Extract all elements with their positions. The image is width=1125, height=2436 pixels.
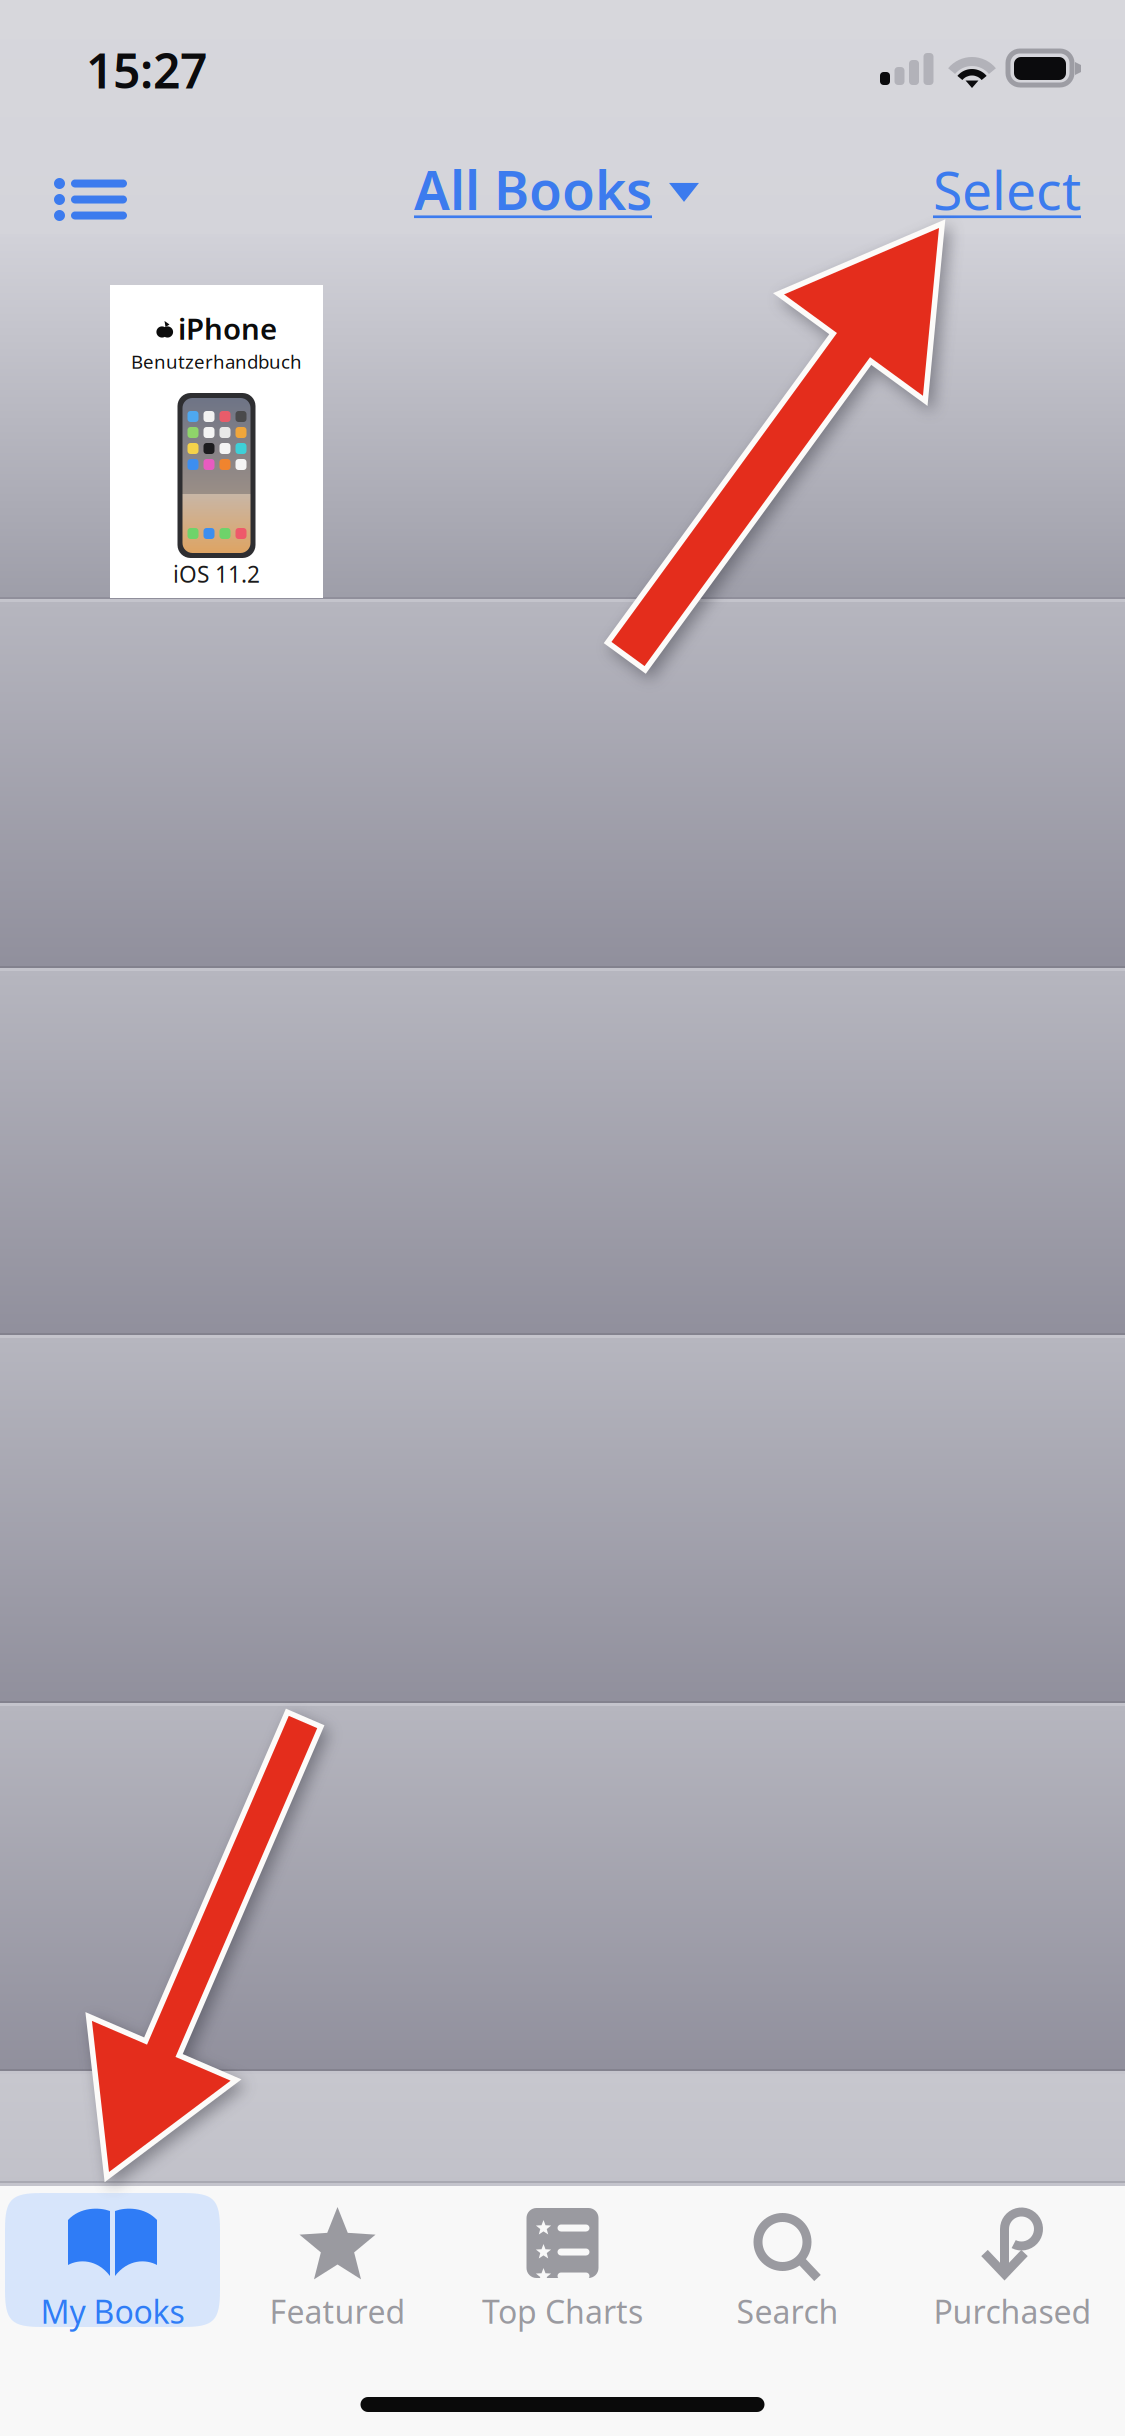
staticText: All Books bbox=[414, 154, 652, 225]
button[interactable]: Select bbox=[921, 144, 1093, 235]
button[interactable]: Top Charts bbox=[450, 2193, 675, 2327]
staticText: Search bbox=[736, 2290, 838, 2332]
staticText: Top Charts bbox=[482, 2290, 643, 2332]
staticText: Benutzerhandbuch bbox=[131, 349, 302, 374]
staticText: Purchased bbox=[933, 2290, 1091, 2332]
button[interactable]: Purchased bbox=[900, 2193, 1125, 2327]
staticText: 15:27 bbox=[86, 38, 207, 102]
button[interactable]: List view bbox=[38, 160, 143, 239]
button[interactable]: All Books bbox=[404, 144, 709, 235]
staticText: iPhone bbox=[178, 309, 277, 348]
button[interactable]: Featured bbox=[225, 2193, 450, 2327]
staticText: My Books bbox=[40, 2290, 184, 2332]
button[interactable]: Search bbox=[675, 2193, 900, 2327]
staticText: Featured bbox=[269, 2290, 405, 2332]
staticText: iOS 11.2 bbox=[173, 559, 260, 589]
button[interactable]: My Books bbox=[0, 2193, 225, 2327]
staticText: Select bbox=[933, 154, 1081, 225]
